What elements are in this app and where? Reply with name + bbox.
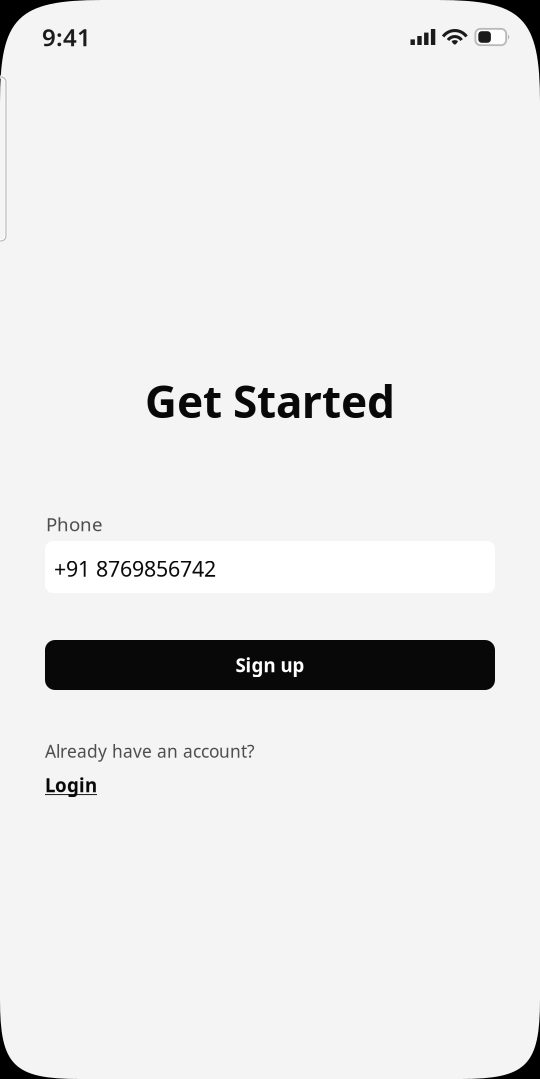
button[interactable]: Login — [45, 774, 97, 796]
staticText: 9:41 — [42, 21, 91, 53]
button[interactable]: Sign up — [45, 640, 495, 690]
staticText: Already have an account? — [45, 739, 255, 762]
staticText: +91 8769856742 — [54, 554, 216, 583]
staticText: Sign up — [235, 653, 304, 677]
button[interactable]: +91 8769856742 — [45, 541, 495, 593]
staticText: Login — [45, 773, 97, 797]
staticText: Get Started — [145, 372, 395, 430]
staticText: Phone — [46, 512, 103, 536]
